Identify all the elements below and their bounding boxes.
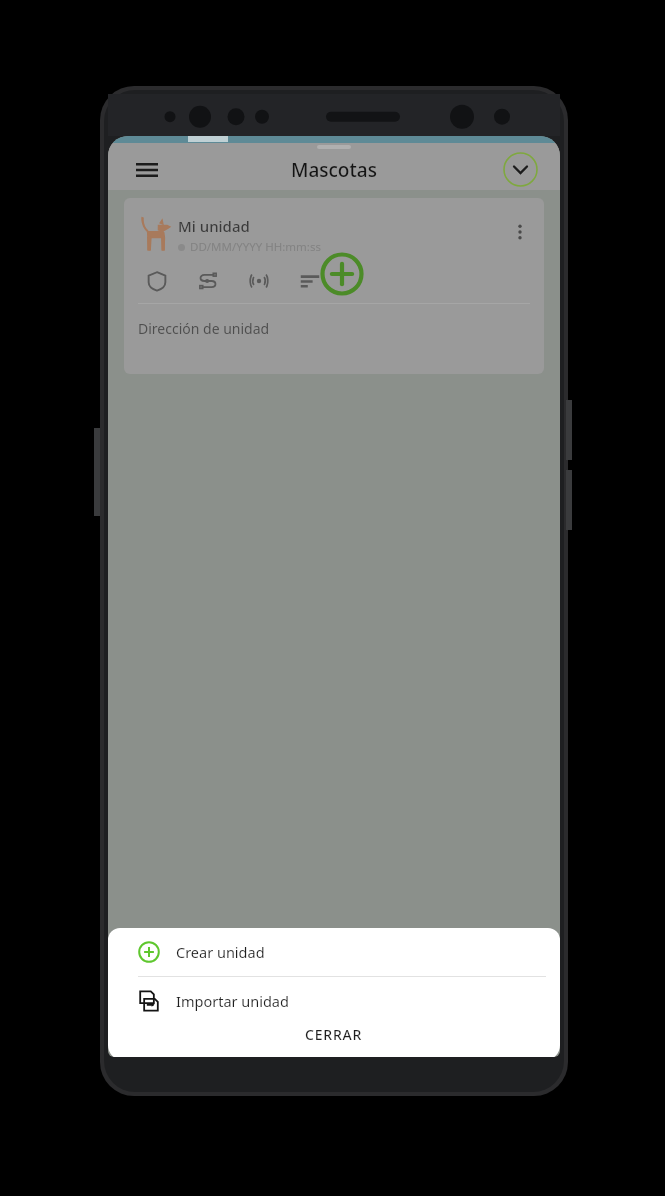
button[interactable]: Más opciones (504, 216, 536, 248)
staticText: Mi unidad (178, 216, 250, 236)
button[interactable]: Ruta (193, 266, 223, 296)
button[interactable]: Sensores (244, 266, 274, 296)
staticText: DD/MM/YYYY HH:mm:ss (190, 239, 321, 255)
staticText: Dirección de unidad (138, 319, 270, 338)
staticText: CERRAR (305, 1025, 363, 1044)
button[interactable]: Importar unidad (108, 977, 560, 1025)
staticText: Mascotas (291, 157, 377, 183)
staticText: Crear unidad (176, 942, 265, 962)
button[interactable]: Seguridad (142, 266, 172, 296)
button[interactable]: Mi unidad (124, 198, 544, 374)
staticText: Importar unidad (176, 991, 289, 1011)
button[interactable]: Menu (130, 153, 164, 187)
button[interactable]: Añadir (320, 252, 364, 296)
button[interactable]: Crear unidad (108, 928, 560, 976)
button[interactable]: Ordenar (295, 266, 325, 296)
button[interactable]: CERRAR (108, 1025, 560, 1057)
button[interactable]: Expandir (503, 152, 538, 187)
